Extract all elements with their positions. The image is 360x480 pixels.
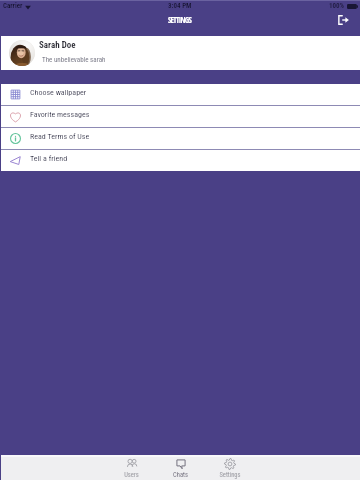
staticText: Users (124, 471, 139, 479)
button[interactable]: Chats (156, 457, 205, 480)
staticText: Choose wallpaper (30, 88, 87, 97)
button[interactable]: Favorite messages (0, 106, 360, 127)
staticText: SETTINGS (168, 14, 192, 25)
staticText: Carrier (3, 2, 23, 10)
staticText: Tell a friend (30, 154, 68, 163)
button[interactable]: Users (107, 457, 156, 480)
staticText: Chats (173, 471, 188, 479)
button[interactable]: Log out (332, 10, 352, 30)
button[interactable]: Read Terms of Use (0, 128, 360, 149)
button[interactable]: Tell a friend (0, 150, 360, 171)
staticText: 100% (329, 2, 345, 10)
staticText: Settings (219, 471, 241, 479)
staticText: Sarah Doe (39, 40, 76, 51)
staticText: Favorite messages (30, 110, 90, 119)
button[interactable]: Settings (205, 457, 254, 480)
staticText: The unbelievable sarah (42, 56, 106, 64)
staticText: 3:04 PM (168, 2, 192, 10)
staticText: Read Terms of Use (30, 132, 90, 141)
button[interactable]: Choose wallpaper (0, 84, 360, 105)
button[interactable]: Sarah Doe (0, 36, 360, 70)
